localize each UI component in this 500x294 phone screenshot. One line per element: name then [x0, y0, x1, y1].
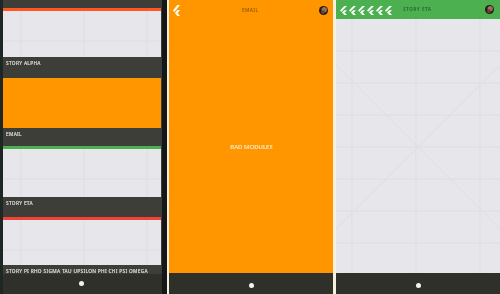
button[interactable]: Back [384, 1, 393, 19]
button[interactable]: Back [375, 1, 384, 19]
button[interactable]: Back [357, 1, 366, 19]
button[interactable]: Back [339, 1, 348, 19]
button[interactable] [3, 8, 161, 57]
button[interactable]: Profile [319, 6, 328, 15]
staticText: BAD MODULE!! [230, 143, 273, 151]
staticText: STORY ETA [6, 200, 33, 207]
button[interactable]: Back [171, 0, 182, 20]
staticText: STORY ETA [403, 6, 432, 13]
staticText: STORY ALPHA [6, 60, 41, 67]
button[interactable]: Back [366, 1, 375, 19]
staticText: EMAIL [6, 131, 22, 138]
button[interactable] [3, 146, 161, 197]
button[interactable]: Profile [485, 5, 494, 14]
button[interactable] [3, 217, 161, 265]
staticText: STORY PI RHO SIGMA TAU UPSILON PHI CHI P… [6, 268, 148, 275]
button[interactable]: Back [348, 1, 357, 19]
staticText: EMAIL [242, 7, 259, 13]
